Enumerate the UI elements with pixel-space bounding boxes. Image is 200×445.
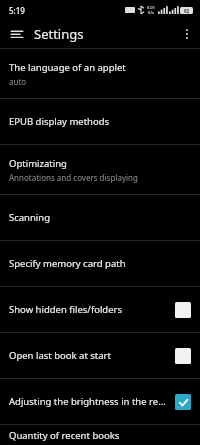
staticText: K/s <box>148 10 154 15</box>
staticText: The language of an applet <box>9 61 126 74</box>
staticText: 5:19 <box>9 5 25 16</box>
staticText: Quantity of recent books <box>9 429 120 442</box>
button[interactable]: Show hidden files/folders <box>0 287 200 332</box>
staticText: 92 <box>184 8 190 14</box>
button[interactable]: Open navigation menu <box>0 20 34 48</box>
staticText: Annotations and covers displaying <box>9 172 138 183</box>
staticText: EPUB display methods <box>9 115 110 128</box>
staticText: Specify memory card path <box>9 257 126 270</box>
staticText: Scanning <box>9 211 51 224</box>
button[interactable]: EPUB display methods <box>0 99 200 144</box>
button[interactable]: More options <box>174 20 200 48</box>
button[interactable]: The language of an applet <box>0 49 200 98</box>
staticText: Settings <box>34 25 174 43</box>
button[interactable]: Quantity of recent books <box>0 425 200 445</box>
staticText: Open last book at start <box>9 349 169 362</box>
staticText: Adjusting the brightness in the readi… <box>9 395 169 408</box>
staticText: 0.01 <box>147 5 155 10</box>
staticText: auto <box>9 76 27 87</box>
staticText: Show hidden files/folders <box>9 303 169 316</box>
button[interactable]: Adjusting the brightness in the readi… <box>0 379 200 424</box>
button[interactable]: Optimizating <box>0 145 200 194</box>
button[interactable]: Open last book at start <box>0 333 200 378</box>
button[interactable]: Specify memory card path <box>0 241 200 286</box>
staticText: Optimizating <box>9 157 67 170</box>
button[interactable]: Scanning <box>0 195 200 240</box>
